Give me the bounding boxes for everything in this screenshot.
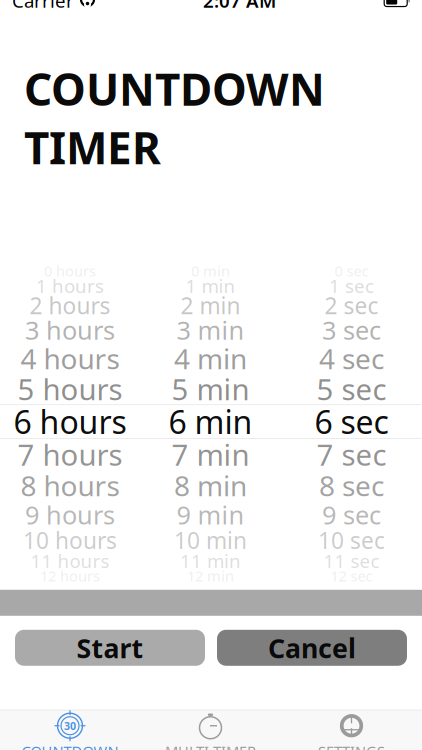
staticText: 4 sec [319, 340, 384, 377]
button[interactable]: MULTI TIMER [140, 710, 281, 750]
staticText: 6 sec [314, 400, 388, 443]
staticText: 2 min [180, 290, 240, 320]
staticText: 1 min [185, 273, 235, 298]
staticText: 6 min [168, 400, 252, 443]
staticText: 10 min [174, 525, 247, 555]
staticText: SETTINGS [318, 741, 385, 750]
button[interactable]: Cancel [217, 630, 407, 666]
staticText: 12 hours [40, 566, 100, 585]
staticText: 11 min [180, 548, 241, 573]
staticText: 11 hours [30, 548, 109, 573]
staticText: 3 min [176, 313, 244, 347]
staticText: 9 min [176, 498, 244, 532]
staticText: 10 sec [318, 525, 385, 555]
button[interactable]: 30 [0, 710, 140, 750]
staticText: 3 hours [25, 313, 115, 347]
staticText: Carrier [12, 0, 74, 13]
staticText: 1 sec [329, 273, 374, 298]
staticText: MULTI TIMER [165, 741, 256, 750]
button[interactable]: SETTINGS [281, 710, 422, 750]
staticText: 6 hours [13, 400, 126, 443]
staticText: 7 hours [17, 435, 122, 474]
staticText: 5 sec [316, 369, 386, 408]
staticText: 7 min [171, 435, 249, 474]
staticText: 12 sec [330, 566, 372, 585]
staticText: 0 sec [334, 261, 368, 281]
staticText: 9 sec [322, 498, 381, 532]
staticText: 10 hours [23, 525, 117, 555]
staticText: 2:07 AM [203, 0, 276, 13]
staticText: 8 hours [20, 467, 119, 504]
staticText: COUNTDOWN [21, 741, 118, 750]
staticText: 30 [64, 719, 76, 733]
staticText: 11 sec [323, 548, 379, 573]
staticText: 7 sec [316, 435, 386, 474]
staticText: 3 sec [322, 313, 381, 347]
staticText: 8 sec [319, 467, 384, 504]
staticText: COUNTDOWN TIMER [24, 59, 325, 176]
staticText: 8 min [174, 467, 247, 504]
staticText: Start [76, 630, 143, 665]
staticText: Cancel [268, 630, 356, 665]
staticText: 0 min [191, 261, 230, 281]
staticText: 12 min [187, 566, 234, 585]
staticText: 5 hours [17, 369, 122, 408]
staticText: 4 hours [20, 340, 119, 377]
staticText: 1 hours [36, 273, 104, 298]
staticText: 4 min [174, 340, 247, 377]
staticText: 5 min [171, 369, 249, 408]
staticText: 0 hours [44, 261, 96, 281]
staticText: 2 sec [324, 290, 378, 320]
staticText: 2 hours [29, 290, 110, 320]
button[interactable]: Start [15, 630, 205, 666]
staticText: 9 hours [25, 498, 115, 532]
